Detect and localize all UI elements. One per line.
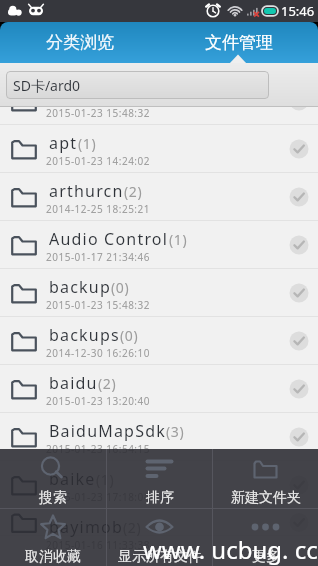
- staticText: (1): [96, 470, 115, 489]
- staticText: baike: [49, 468, 96, 490]
- button[interactable]: SD卡/ard0: [6, 71, 269, 99]
- staticText: baidu: [49, 372, 98, 394]
- staticText: 文件管理: [205, 32, 273, 53]
- staticText: 2015-01-23 14:24:02: [46, 154, 150, 168]
- staticText: 显示所有文件: [118, 548, 202, 566]
- button[interactable]: backup: [0, 269, 318, 317]
- staticText: backup: [49, 276, 111, 298]
- staticText: 分类浏览: [46, 32, 114, 53]
- staticText: (0): [120, 326, 139, 345]
- staticText: (0): [111, 278, 130, 297]
- staticText: arthurcn: [49, 180, 124, 202]
- button[interactable]: arthurcn: [0, 173, 318, 221]
- button[interactable]: 排序: [107, 449, 212, 508]
- button[interactable]: baike: [0, 461, 318, 509]
- staticText: (3): [166, 422, 185, 441]
- staticText: 2015-01-17 21:34:46: [46, 250, 150, 264]
- button[interactable]: backups: [0, 317, 318, 365]
- staticText: 搜索: [39, 489, 67, 507]
- button[interactable]: 搜索: [0, 449, 106, 508]
- staticText: 排序: [146, 489, 174, 507]
- button[interactable]: BaiduMapSdk: [0, 413, 318, 461]
- staticText: BaiduMapSdk: [49, 420, 166, 442]
- button[interactable]: Audio Control: [0, 221, 318, 269]
- button[interactable]: baidu: [0, 365, 318, 413]
- staticText: (1): [169, 230, 188, 249]
- staticText: 取消收藏: [25, 548, 81, 566]
- button[interactable]: 显示所有文件: [107, 509, 212, 566]
- staticText: (1): [78, 134, 97, 153]
- staticText: 更多: [252, 548, 280, 566]
- staticText: 2015-01-23 13:20:40: [46, 394, 150, 408]
- button[interactable]: 取消收藏: [0, 509, 106, 566]
- staticText: 2015-01-23 15:48:32: [46, 298, 150, 312]
- staticText: 2014-12-30 16:26:10: [46, 346, 150, 360]
- button[interactable]: apt: [0, 125, 318, 173]
- staticText: Audio Control: [49, 228, 169, 250]
- staticText: 2014-12-25 18:25:21: [46, 202, 150, 216]
- staticText: (2): [98, 374, 117, 393]
- button[interactable]: 分类浏览: [0, 22, 159, 63]
- staticText: 2015-01-23 16:54:15: [46, 442, 150, 456]
- staticText: 2015-01-23 17:18:04: [46, 490, 150, 504]
- staticText: SD卡/ard0: [13, 76, 81, 95]
- staticText: 15:46: [281, 2, 315, 20]
- button[interactable]: 新建文件夹: [213, 449, 318, 508]
- staticText: www. ucbug. cc: [143, 533, 318, 566]
- staticText: backups: [49, 324, 120, 346]
- staticText: (2): [124, 182, 143, 201]
- staticText: apt: [49, 132, 78, 154]
- staticText: 2015-01-23 15:48:32: [46, 107, 150, 120]
- staticText: 2015-01-16 11:33:38: [46, 538, 150, 552]
- button[interactable]: bayimob: [0, 509, 318, 536]
- button[interactable]: 文件管理: [159, 22, 318, 63]
- staticText: 新建文件夹: [231, 489, 301, 507]
- staticText: bayimob: [49, 516, 123, 538]
- button[interactable]: 更多: [213, 509, 318, 566]
